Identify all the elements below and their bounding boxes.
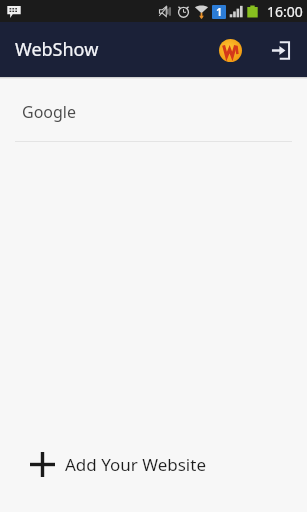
staticText: 1 (216, 5, 222, 19)
staticText: 16:00 (267, 2, 303, 21)
button[interactable]: Account (213, 33, 247, 67)
button[interactable]: Add Your Website (0, 442, 307, 486)
button[interactable]: Google (0, 83, 307, 142)
staticText: Google (22, 101, 77, 123)
button[interactable]: Sign in (263, 33, 297, 67)
staticText: Add Your Website (65, 453, 206, 476)
staticText: WebShow (15, 37, 99, 62)
